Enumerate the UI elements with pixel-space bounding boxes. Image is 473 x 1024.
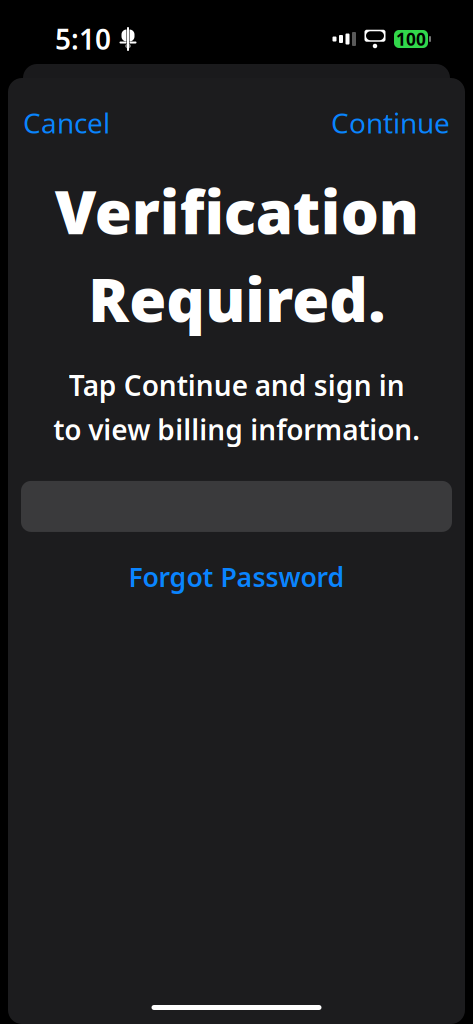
button[interactable]: Forgot Password: [8, 549, 465, 604]
staticText: 5:10: [55, 20, 111, 58]
button[interactable]: Cancel: [21, 96, 112, 149]
staticText: Tap Continue and sign in to view billing…: [53, 366, 420, 448]
staticText: Continue: [331, 104, 450, 141]
staticText: Forgot Password: [128, 559, 344, 594]
staticText: Cancel: [23, 104, 110, 141]
staticText: 100: [396, 27, 426, 50]
button[interactable]: Continue: [329, 96, 452, 149]
staticText: Verification Required.: [54, 171, 418, 339]
